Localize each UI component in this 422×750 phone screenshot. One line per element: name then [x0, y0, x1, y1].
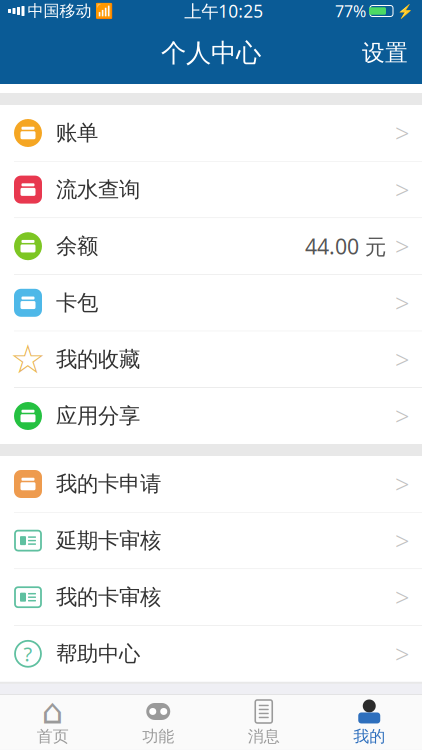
staticText: >	[395, 173, 409, 206]
staticText: >	[395, 467, 409, 501]
button[interactable]: 功能	[105, 696, 211, 748]
staticText: 首页	[37, 726, 69, 746]
staticText: 应用分享	[56, 403, 140, 429]
button[interactable]: ☆	[0, 331, 422, 388]
staticText: 我的	[353, 726, 385, 746]
staticText: 功能	[142, 726, 174, 746]
staticText: 账单	[56, 120, 98, 146]
staticText: 我的卡审核	[56, 584, 161, 610]
staticText: ?	[23, 640, 32, 667]
staticText: 流水查询	[56, 176, 140, 203]
staticText: ☆	[10, 337, 46, 382]
staticText: 消息	[248, 726, 280, 746]
staticText: ⌂	[42, 692, 64, 731]
staticText: >	[395, 343, 409, 376]
staticText: >	[395, 116, 409, 150]
staticText: 我的卡申请	[56, 471, 161, 497]
button[interactable]: 应用分享	[0, 388, 422, 444]
button[interactable]: ?	[0, 626, 422, 682]
button[interactable]: 卡包	[0, 275, 422, 331]
button[interactable]: 设置	[348, 31, 422, 75]
staticText: >	[395, 580, 409, 614]
staticText: 个人中心	[161, 37, 261, 68]
staticText: 余额	[56, 233, 98, 259]
staticText: 上午10:25	[184, 0, 263, 22]
button[interactable]: 余额	[0, 218, 422, 275]
button[interactable]: 我的	[316, 696, 422, 748]
staticText: 中国移动	[27, 1, 91, 21]
button[interactable]: 延期卡审核	[0, 513, 422, 569]
button[interactable]: 我的卡申请	[0, 456, 422, 513]
staticText: >	[395, 399, 409, 433]
staticText: 延期卡审核	[56, 527, 161, 554]
staticText: >	[395, 637, 409, 671]
staticText: >	[395, 229, 409, 263]
staticText: >	[395, 524, 409, 557]
button[interactable]: 流水查询	[0, 162, 422, 218]
staticText: ⚡	[397, 3, 414, 19]
button[interactable]: 消息	[211, 696, 316, 748]
staticText: 77%	[335, 0, 366, 22]
staticText: 帮助中心	[56, 641, 140, 667]
staticText: 卡包	[56, 290, 98, 316]
staticText: >	[395, 286, 409, 320]
button[interactable]: ⌂	[0, 696, 105, 748]
staticText: 设置	[362, 39, 408, 67]
staticText: 44.00 元	[305, 232, 386, 260]
staticText: 我的收藏	[56, 346, 140, 372]
button[interactable]: 账单	[0, 105, 422, 162]
button[interactable]: 我的卡审核	[0, 569, 422, 626]
staticText: 📶	[94, 3, 112, 19]
